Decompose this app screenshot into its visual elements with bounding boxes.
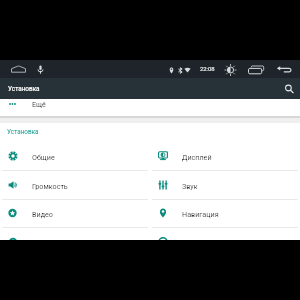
staticText: Установка	[7, 128, 39, 136]
button[interactable]: Видео	[0, 199, 150, 228]
staticText: Дисплей	[182, 153, 212, 161]
button[interactable]: Громкость	[0, 171, 150, 200]
button[interactable]: Время	[0, 228, 150, 240]
button[interactable]: Система	[150, 228, 300, 240]
button[interactable]: Звук	[150, 171, 300, 200]
button[interactable]: Home	[11, 65, 26, 73]
staticText: Установка	[8, 85, 40, 93]
staticText: Навигация	[182, 210, 219, 218]
button[interactable]: Voice assistant	[37, 65, 44, 74]
button[interactable]: Ещё	[0, 99, 300, 116]
staticText: Видео	[32, 210, 53, 218]
staticText: Ещё	[32, 100, 46, 108]
button[interactable]: Back	[276, 65, 293, 75]
button[interactable]: Навигация	[150, 199, 300, 228]
button[interactable]: Brightness	[224, 64, 237, 76]
button[interactable]: Общие	[0, 142, 150, 171]
staticText: Громкость	[32, 182, 68, 190]
button[interactable]: Recent apps	[247, 64, 265, 75]
staticText: Звук	[182, 182, 198, 190]
button[interactable]: Дисплей	[150, 142, 300, 171]
staticText: Общие	[32, 153, 55, 161]
staticText: 22:08	[200, 66, 215, 73]
button[interactable]: Search	[283, 83, 295, 95]
